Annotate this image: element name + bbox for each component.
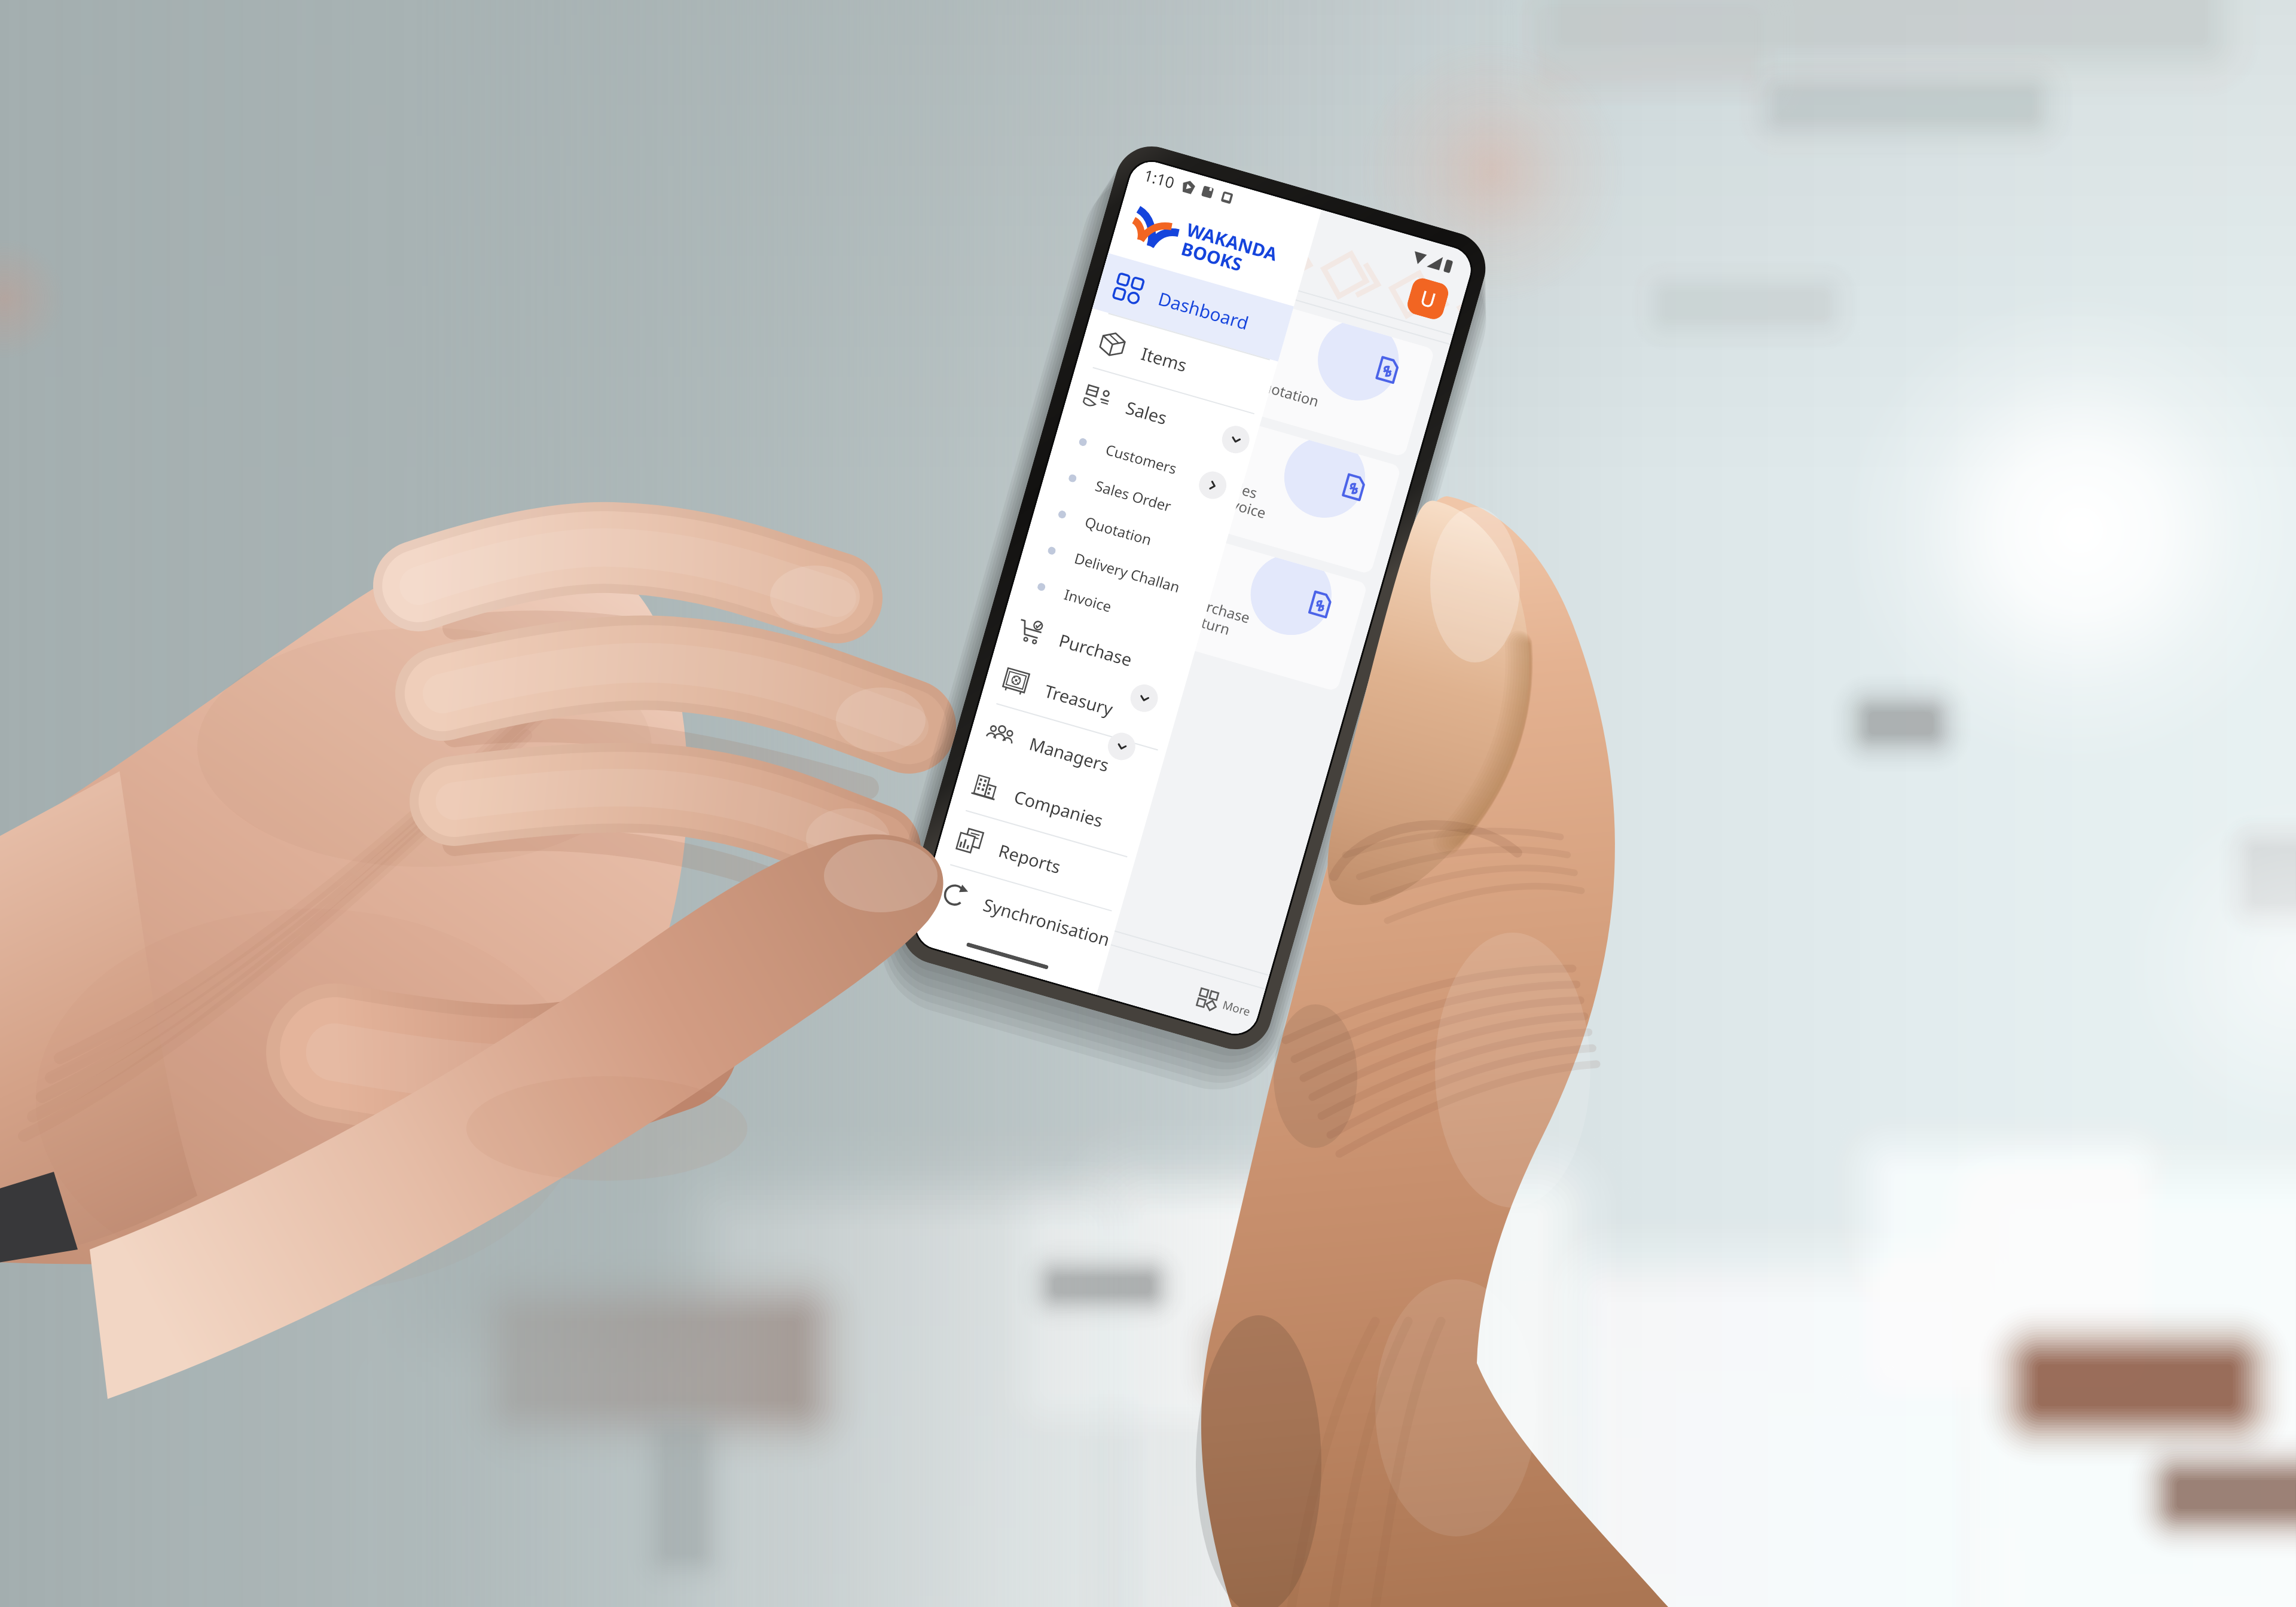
staticText: 1:10 xyxy=(1142,164,1177,193)
staticText: Delivery Challan xyxy=(1072,548,1182,597)
staticText: Customer xyxy=(923,911,977,941)
button[interactable]: Collapse xyxy=(1127,681,1161,715)
button[interactable]: Invoice xyxy=(1009,561,1206,651)
staticText: Sales xyxy=(1123,395,1170,429)
staticText: Items xyxy=(1139,341,1190,377)
staticText: Synchronisation xyxy=(981,893,1113,951)
button[interactable]: Managers xyxy=(965,700,1166,806)
button[interactable]: Sales Order xyxy=(1041,453,1237,542)
button[interactable] xyxy=(1059,377,1215,521)
staticText: Quotation xyxy=(1250,373,1322,411)
button[interactable] xyxy=(1025,494,1182,638)
staticText: U xyxy=(1417,284,1439,314)
button[interactable]: Companies xyxy=(950,753,1151,859)
staticText: Purchase xyxy=(1056,628,1135,671)
staticText: Purchase Return xyxy=(1183,591,1253,644)
staticText: Treasury xyxy=(1042,679,1116,721)
staticText: Managers xyxy=(1027,732,1112,777)
button[interactable]: Treasury xyxy=(980,648,1181,752)
staticText: Customers xyxy=(1103,439,1180,479)
button[interactable]: Sales Invoice xyxy=(1191,415,1402,575)
button[interactable]: Dashboard xyxy=(1092,253,1294,362)
button[interactable]: Quotation xyxy=(1225,298,1435,457)
staticText: Sales Order xyxy=(1093,475,1174,516)
button[interactable]: Delivery Challan xyxy=(1020,525,1216,614)
button[interactable] xyxy=(1093,260,1249,404)
staticText: Companies xyxy=(1012,784,1106,832)
button[interactable]: Items xyxy=(1077,309,1278,416)
button[interactable]: Customers xyxy=(1051,416,1247,506)
button[interactable]: Purchase Return xyxy=(1158,532,1368,692)
button[interactable]: More xyxy=(1186,971,1265,1039)
button[interactable]: Purchase xyxy=(995,597,1195,701)
staticText: Invoice xyxy=(1062,584,1114,616)
staticText: WAKANDA BOOKS xyxy=(1178,217,1280,285)
button[interactable]: Quotation xyxy=(1030,489,1226,578)
button[interactable]: Reports xyxy=(934,807,1135,913)
button[interactable]: Synchronisation xyxy=(919,861,1120,967)
staticText: Reports xyxy=(996,839,1064,879)
button[interactable]: Collapse xyxy=(1219,423,1253,457)
button[interactable]: Sales xyxy=(1061,363,1262,470)
button[interactable]: User profile xyxy=(1405,276,1451,322)
staticText: Quotation xyxy=(1083,512,1154,550)
staticText: Dashboard xyxy=(1155,286,1252,335)
staticText: More xyxy=(1221,997,1252,1020)
staticText: Sales Invoice xyxy=(1216,474,1273,523)
button[interactable]: Customer xyxy=(911,892,1200,1021)
button[interactable]: Collapse xyxy=(1105,729,1139,763)
staticText: NDA xyxy=(1119,196,1164,231)
button[interactable]: Expand xyxy=(1196,468,1230,502)
